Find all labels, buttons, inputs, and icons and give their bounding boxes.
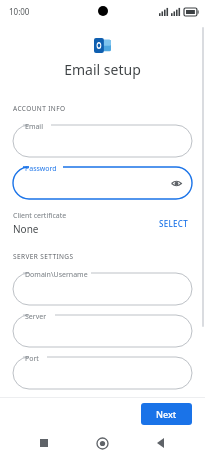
- staticText: Domain\Username: [25, 270, 88, 280]
- staticText: Client certificate: [13, 211, 67, 221]
- staticText: Email setup: [0, 60, 205, 79]
- staticText: SERVER SETTINGS: [13, 252, 74, 261]
- button[interactable]: Password: [13, 167, 192, 199]
- button[interactable]: Home: [89, 430, 115, 456]
- staticText: SELECT: [159, 218, 188, 229]
- staticText: Password: [25, 164, 57, 174]
- staticText: Server: [25, 312, 47, 322]
- staticText: Next: [156, 408, 177, 420]
- button[interactable]: Next: [141, 403, 192, 425]
- button[interactable]: Server: [13, 315, 192, 347]
- staticText: Email: [25, 122, 43, 132]
- staticText: Port: [25, 354, 39, 364]
- staticText: 10:00: [9, 6, 30, 17]
- button[interactable]: Back: [147, 430, 173, 456]
- staticText: None: [13, 222, 39, 236]
- staticText: ACCOUNT INFO: [13, 104, 66, 113]
- button[interactable]: Port: [13, 357, 192, 389]
- button[interactable]: Domain\Username: [13, 273, 192, 305]
- button[interactable]: Recents: [31, 430, 57, 456]
- button[interactable]: Show password: [168, 175, 184, 191]
- button[interactable]: SELECT: [155, 215, 192, 232]
- button[interactable]: Email: [13, 125, 192, 157]
